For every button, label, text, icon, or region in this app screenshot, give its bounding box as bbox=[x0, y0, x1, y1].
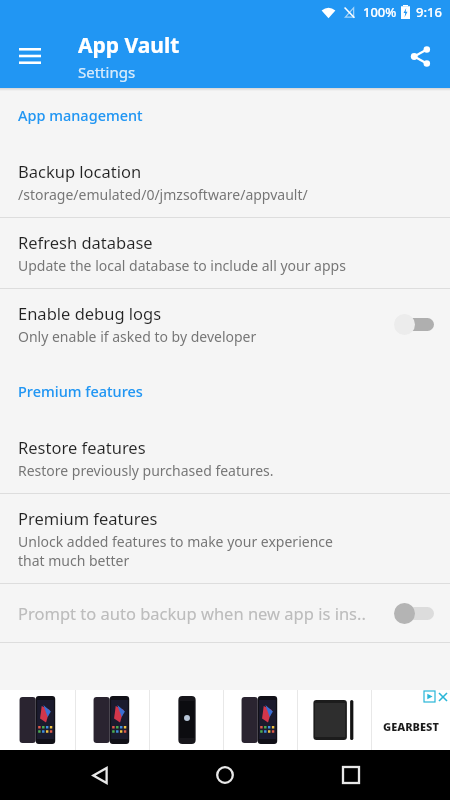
button[interactable]: Premium features bbox=[0, 494, 450, 583]
staticText: Backup location bbox=[18, 160, 142, 182]
button[interactable]: Restore features bbox=[0, 423, 450, 493]
staticText: GEARBEST bbox=[383, 719, 439, 734]
staticText: Premium features bbox=[18, 507, 158, 529]
staticText: Enable debug logs bbox=[18, 302, 162, 324]
staticText: /storage/emulated/0/jmzsoftware/appvault… bbox=[18, 185, 308, 204]
button[interactable]: Recent apps bbox=[325, 750, 377, 800]
button[interactable]: Enable debug logs bbox=[0, 289, 450, 359]
staticText: Update the local database to include all… bbox=[18, 256, 346, 275]
button[interactable]: Advertisement bbox=[0, 690, 450, 750]
staticText: Premium features bbox=[18, 381, 143, 401]
button[interactable]: Refresh database bbox=[0, 218, 450, 288]
staticText: Only enable if asked to by developer bbox=[18, 327, 257, 346]
staticText: App management bbox=[18, 105, 143, 125]
button[interactable]: Share bbox=[396, 32, 444, 80]
staticText: App Vault bbox=[78, 31, 180, 60]
staticText: Refresh database bbox=[18, 231, 153, 253]
staticText: Prompt to auto backup when new app is in… bbox=[18, 602, 394, 624]
staticText: 9:16 bbox=[416, 3, 442, 21]
staticText: Restore features bbox=[18, 436, 146, 458]
staticText: Settings bbox=[78, 62, 136, 82]
staticText: Unlock added features to make your exper… bbox=[18, 532, 333, 570]
staticText: 100% bbox=[363, 3, 397, 21]
button[interactable]: Back bbox=[74, 750, 126, 800]
staticText: Restore previously purchased features. bbox=[18, 461, 274, 480]
button[interactable]: Prompt to auto backup when new app is in… bbox=[0, 584, 450, 642]
button[interactable]: Home bbox=[199, 750, 251, 800]
button[interactable]: Backup location bbox=[0, 147, 450, 217]
button[interactable]: Open navigation menu bbox=[6, 32, 54, 80]
